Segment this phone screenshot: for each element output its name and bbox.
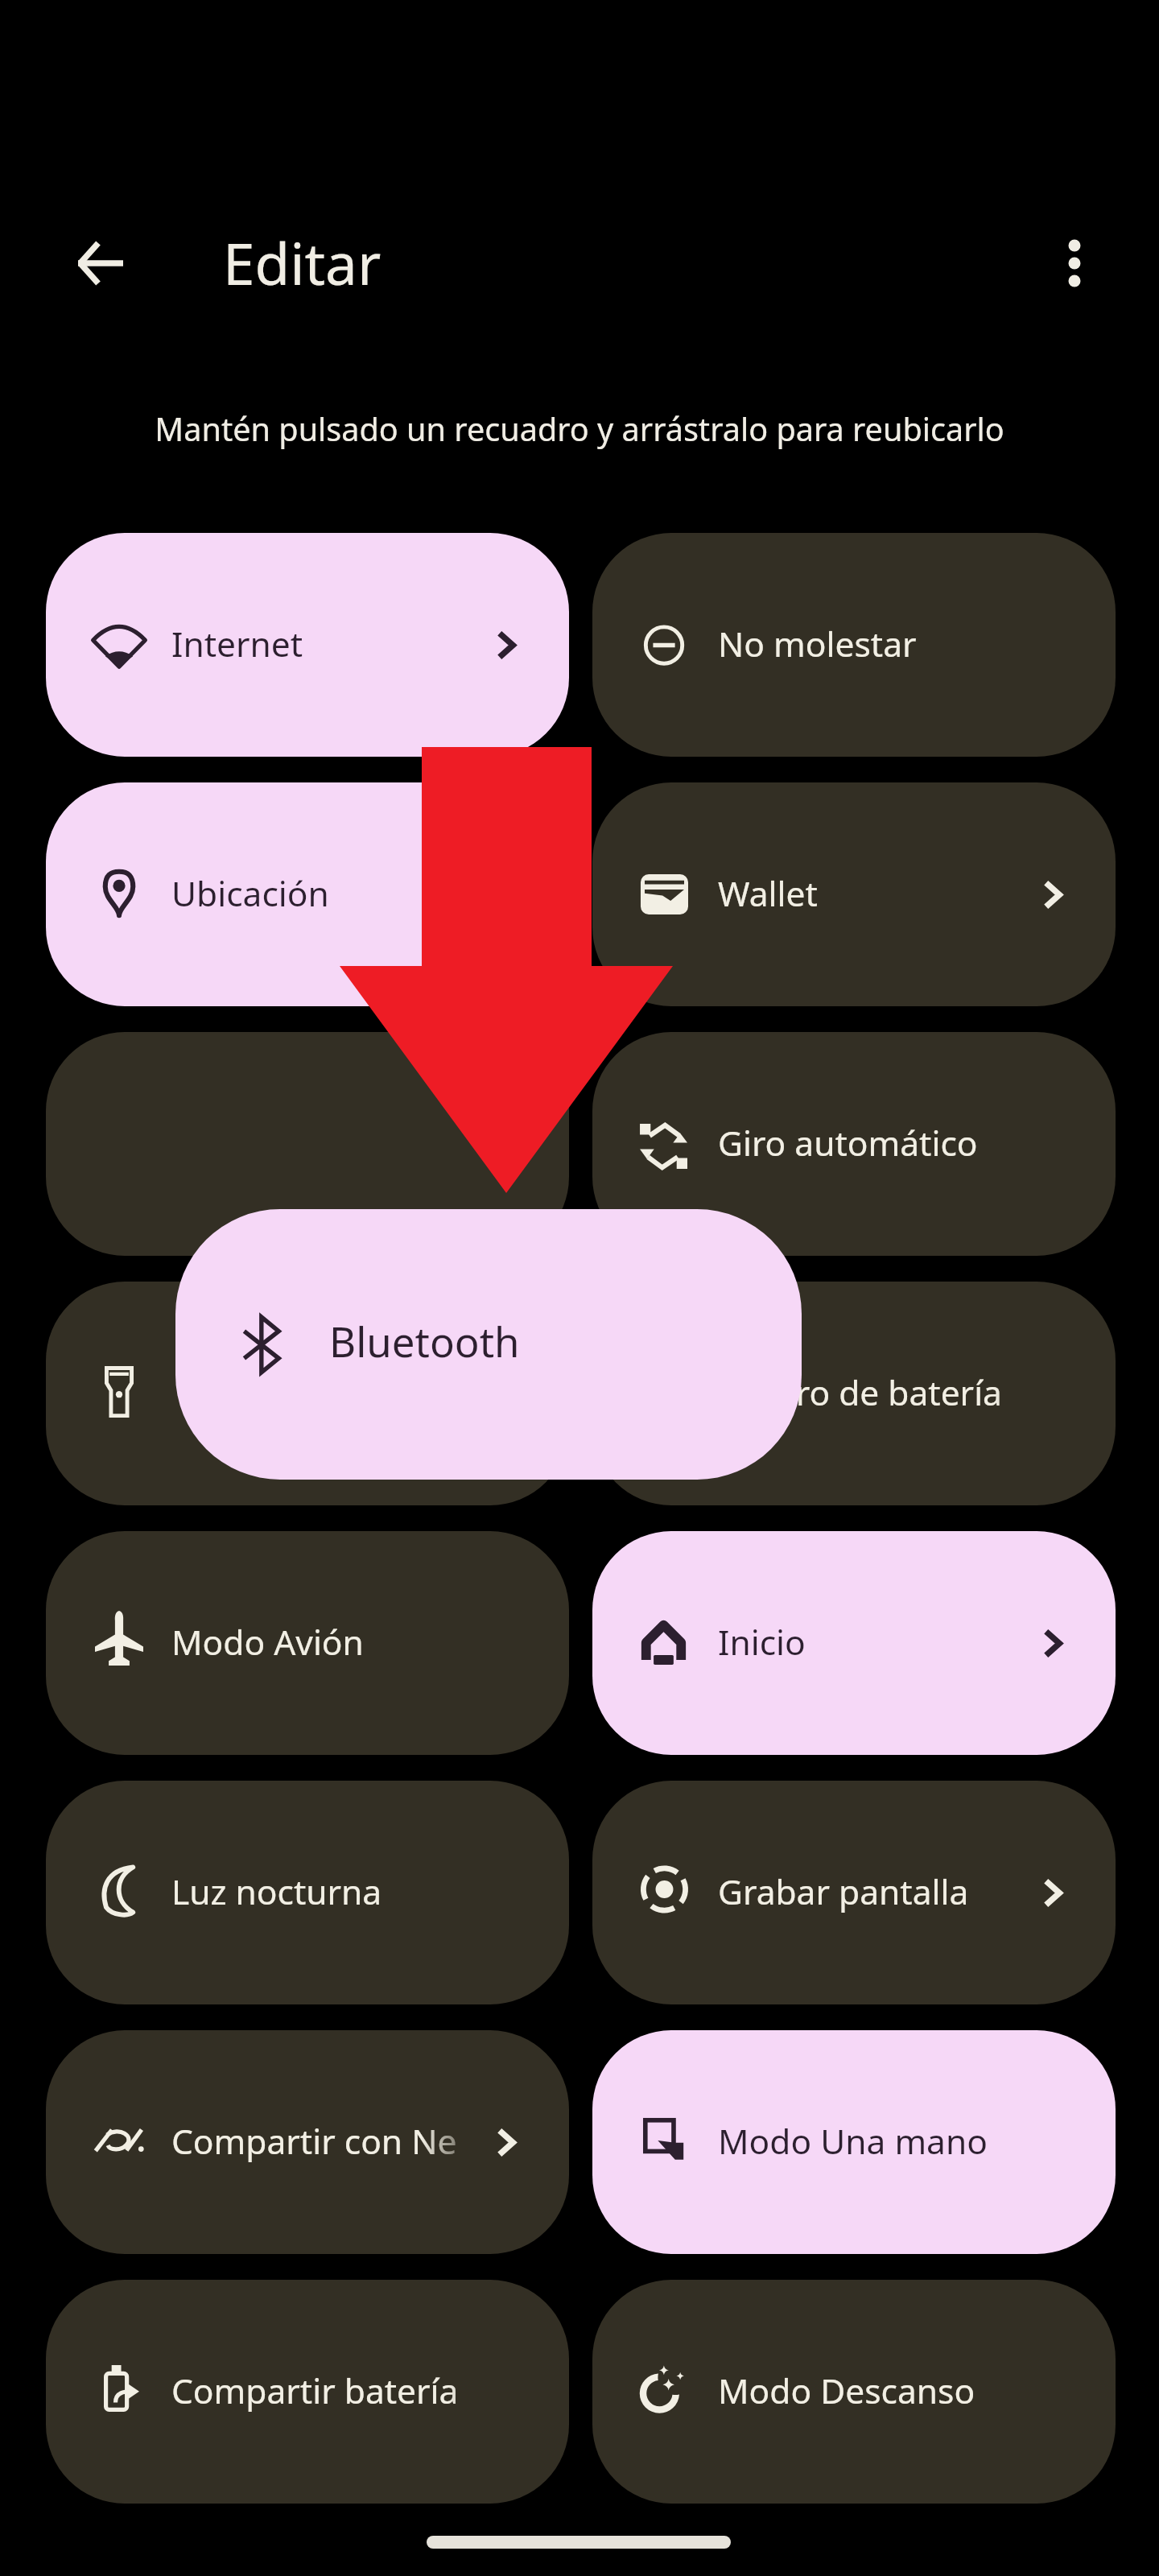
staticText: Ubicación	[171, 870, 329, 917]
staticText: Luz nocturna	[171, 1868, 382, 1915]
staticText: Giro automático	[718, 1120, 978, 1166]
button[interactable]: Modo Descanso	[592, 2280, 1116, 2504]
button[interactable]: Ubicación	[46, 782, 569, 1006]
button[interactable]: Atrás	[57, 220, 144, 307]
button[interactable]: Luz nocturna	[46, 1781, 569, 2004]
staticText: Modo Descanso	[718, 2368, 975, 2414]
staticText: Modo Avión	[171, 1619, 364, 1666]
button[interactable]: Wallet	[592, 782, 1116, 1006]
button[interactable]: Internet	[46, 533, 569, 757]
staticText: Mantén pulsado un recuadro y arrástralo …	[155, 407, 1004, 451]
staticText: Ahorro de batería	[718, 1369, 1002, 1416]
button[interactable]: Bluetooth	[175, 1209, 802, 1480]
button[interactable]: No molestar	[592, 533, 1116, 757]
button[interactable]: Giro automático	[592, 1032, 1116, 1256]
staticText: Modo Una mano	[718, 2118, 988, 2165]
staticText: Compartir con Ne	[171, 2118, 457, 2165]
button[interactable]: Ahorro de batería	[592, 1282, 1116, 1505]
staticText: Inicio	[718, 1619, 806, 1666]
staticText: Editar	[223, 224, 382, 302]
staticText: No molestar	[718, 621, 917, 667]
button[interactable]: Más opciones	[1031, 220, 1118, 307]
button[interactable]: Mosaico vacío	[46, 1032, 569, 1256]
button[interactable]: Linterna	[46, 1282, 569, 1505]
staticText: Wallet	[718, 870, 818, 917]
button[interactable]: Inicio	[592, 1531, 1116, 1755]
button[interactable]: Grabar pantalla	[592, 1781, 1116, 2004]
button[interactable]: Compartir batería	[46, 2280, 569, 2504]
button[interactable]: Modo Avión	[46, 1531, 569, 1755]
staticText: Compartir batería	[171, 2368, 459, 2414]
staticText: Bluetooth	[329, 1313, 520, 1368]
button[interactable]: Modo Una mano	[592, 2030, 1116, 2254]
staticText: Grabar pantalla	[718, 1868, 969, 1915]
button[interactable]: Compartir con Ne	[46, 2030, 569, 2254]
staticText: Internet	[171, 621, 303, 667]
